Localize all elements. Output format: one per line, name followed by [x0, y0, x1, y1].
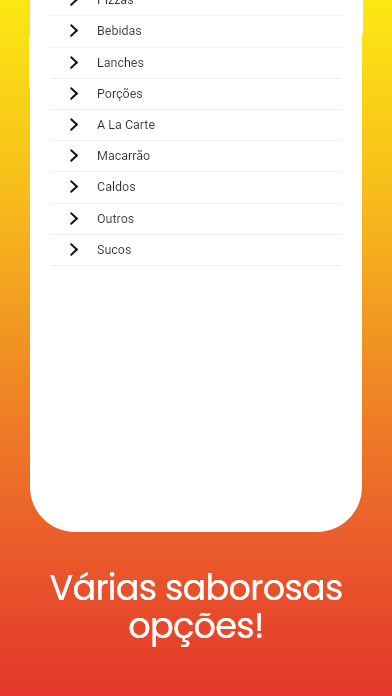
staticText: Sucos	[97, 242, 132, 257]
other: Abrir Lanches	[70, 56, 78, 69]
button[interactable]: Abrir A La Carte	[30, 109, 362, 140]
button[interactable]: Abrir Lanches	[30, 47, 362, 78]
button[interactable]: Abrir Pizzas	[30, 0, 362, 15]
other: Abrir Macarrão	[70, 149, 78, 162]
other: Abrir Sucos	[70, 243, 78, 256]
button[interactable]: Abrir Outros	[30, 203, 362, 234]
other: Abrir A La Carte	[70, 118, 78, 131]
staticText: Porções	[97, 86, 143, 101]
staticText: Bebidas	[97, 23, 142, 38]
button[interactable]: Abrir Bebidas	[30, 15, 362, 46]
staticText: Caldos	[97, 179, 136, 194]
other: Abrir Porções	[70, 87, 78, 100]
button[interactable]: Abrir Sucos	[30, 234, 362, 265]
staticText: Pizzas	[97, 0, 134, 7]
other: Abrir Outros	[70, 212, 78, 225]
other: Abrir Caldos	[70, 180, 78, 193]
button[interactable]: Abrir Caldos	[30, 171, 362, 202]
button[interactable]: Abrir Porções	[30, 78, 362, 109]
staticText: Várias saborosas opções!	[0, 563, 392, 650]
other: Abrir Bebidas	[70, 24, 78, 37]
staticText: Outros	[97, 211, 135, 226]
staticText: Lanches	[97, 55, 144, 70]
other: Abrir Pizzas	[70, 0, 78, 6]
button[interactable]: Abrir Macarrão	[30, 140, 362, 171]
staticText: Macarrão	[97, 148, 151, 163]
staticText: A La Carte	[97, 117, 156, 132]
